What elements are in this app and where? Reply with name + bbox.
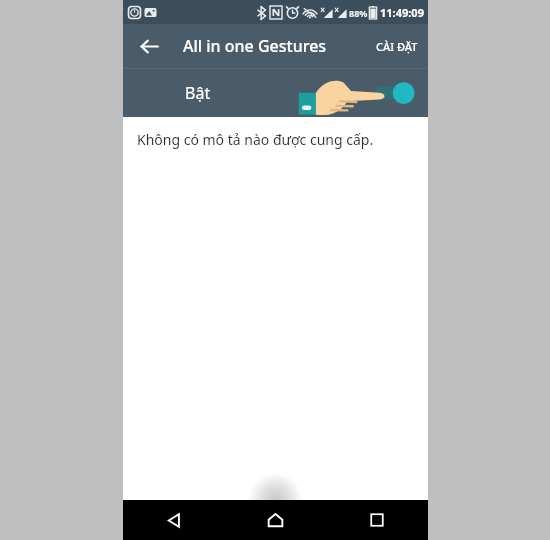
- button[interactable]: Recent apps: [326, 500, 428, 540]
- button[interactable]: Back: [123, 500, 224, 540]
- staticText: Bật: [185, 82, 211, 104]
- staticText: Không có mô tả nào được cung cấp.: [137, 130, 374, 149]
- staticText: CÀI ĐẶT: [376, 39, 418, 54]
- staticText: 11:49:09: [380, 5, 424, 20]
- staticText: 88%: [349, 7, 368, 19]
- staticText: All in one Gestures: [183, 35, 327, 57]
- button[interactable]: Back: [129, 26, 169, 66]
- button[interactable]: Toggle on: [372, 78, 420, 108]
- button[interactable]: Bật: [123, 68, 428, 117]
- button[interactable]: Home: [224, 500, 326, 540]
- button[interactable]: CÀI ĐẶT: [366, 24, 428, 68]
